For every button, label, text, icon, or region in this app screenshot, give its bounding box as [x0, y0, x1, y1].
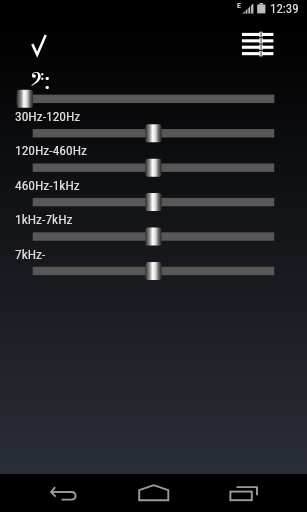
- staticText: 12:39: [270, 1, 299, 16]
- staticText: E: [237, 1, 241, 10]
- staticText: 460Hz-1kHz: [15, 177, 80, 193]
- button[interactable]: Band 5 level: [0, 252, 307, 286]
- staticText: 𝄢:: [30, 65, 51, 95]
- button[interactable]: Apply: [22, 27, 56, 62]
- button[interactable]: Back: [40, 480, 84, 512]
- staticText: 7kHz-: [15, 246, 46, 262]
- staticText: 30Hz-120Hz: [15, 108, 81, 124]
- button[interactable]: Band 0 level: [0, 82, 307, 116]
- staticText: 120Hz-460Hz: [15, 142, 87, 158]
- button[interactable]: Band 4 level: [0, 218, 307, 252]
- staticText: 1kHz-7kHz: [15, 211, 73, 227]
- button[interactable]: Band 2 level: [0, 150, 307, 184]
- button[interactable]: Band 3 level: [0, 184, 307, 218]
- button[interactable]: Band 1 level: [0, 116, 307, 150]
- button[interactable]: Home: [133, 480, 175, 512]
- button[interactable]: Equalizer presets: [238, 27, 278, 62]
- button[interactable]: Recent apps: [224, 480, 264, 512]
